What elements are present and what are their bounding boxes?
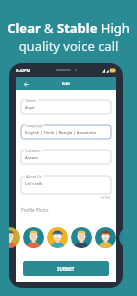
button[interactable]: Avatar 1 <box>9 227 20 248</box>
button[interactable]: Language <box>21 125 111 139</box>
staticText: Let's talk <box>25 181 43 187</box>
button[interactable]: Avatar 4 <box>71 227 92 248</box>
button[interactable]: Avatar 6 <box>119 227 123 248</box>
staticText: English | Hindi | Bangla | Assamese <box>25 130 97 136</box>
staticText: Location <box>26 148 41 153</box>
staticText: Edit <box>62 81 71 87</box>
staticText: Name <box>26 98 37 103</box>
staticText: quality voice call <box>0 37 137 55</box>
staticText: Arpit <box>25 105 35 111</box>
staticText: Profile Photo <box>21 207 49 213</box>
staticText: Assam <box>25 155 38 161</box>
staticText: Language <box>26 123 43 128</box>
button[interactable]: Avatar 2 <box>23 227 44 248</box>
button[interactable]: Back <box>21 79 31 89</box>
button[interactable]: Name <box>21 100 111 114</box>
button[interactable]: About Us <box>21 176 111 194</box>
button[interactable]: Avatar 5 <box>95 227 116 248</box>
staticText: Clear & Stable High <box>0 19 137 37</box>
button[interactable]: Avatar 3 <box>47 227 68 248</box>
staticText: About Us <box>26 174 42 179</box>
staticText: 8:42PM <box>16 68 31 73</box>
staticText: SUBMIT <box>57 266 75 272</box>
button[interactable]: SUBMIT <box>23 261 109 276</box>
button[interactable]: Location <box>21 150 111 164</box>
staticText: 0/160 <box>101 195 111 200</box>
